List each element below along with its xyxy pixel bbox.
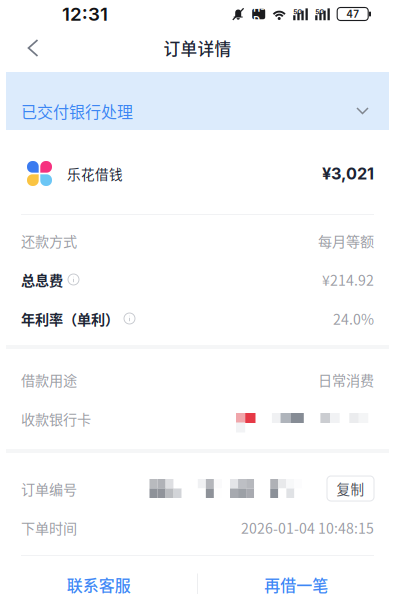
button[interactable]: 联系客服 xyxy=(0,565,197,594)
button[interactable]: 再借一笔 xyxy=(197,565,395,594)
staticText: 12:31 xyxy=(62,3,108,25)
staticText: 5G xyxy=(315,8,324,16)
staticText: 年利率（单利） xyxy=(21,308,119,329)
staticText: 还款方式 xyxy=(21,230,77,251)
staticText: 2026-01-04 10:48:15 xyxy=(241,517,374,538)
staticText: 日常消费 xyxy=(318,369,374,390)
staticText: 24.0% xyxy=(333,308,374,329)
staticText: 已交付银行处理 xyxy=(21,99,133,123)
button[interactable]: 复制 xyxy=(327,476,374,501)
staticText: 收款银行卡 xyxy=(21,408,91,429)
staticText: 订单编号 xyxy=(21,478,77,499)
staticText: 乐花借钱 xyxy=(67,164,123,183)
staticText: 下单时间 xyxy=(21,517,77,538)
staticText: 复制 xyxy=(336,479,364,498)
staticText: 5G xyxy=(293,8,302,16)
staticText: 订单详情 xyxy=(163,36,231,60)
staticText: 总息费 xyxy=(21,269,63,290)
staticText: ¥3,021 xyxy=(322,164,374,183)
staticText: 联系客服 xyxy=(67,573,131,594)
button[interactable]: Back xyxy=(11,28,55,68)
staticText: ¥214.92 xyxy=(322,269,374,290)
button[interactable]: 已交付银行处理 xyxy=(6,72,389,130)
staticText: 再借一笔 xyxy=(264,573,328,594)
staticText: 借款用途 xyxy=(21,369,77,390)
staticText: 47 xyxy=(346,8,359,20)
staticText: HD xyxy=(253,3,264,25)
staticText: 每月等额 xyxy=(318,230,374,251)
